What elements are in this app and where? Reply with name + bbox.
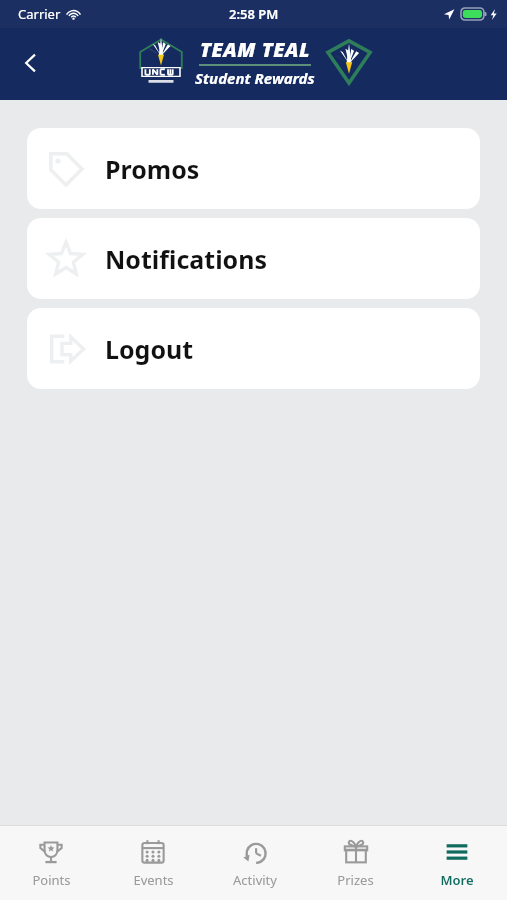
button[interactable]: Promos	[27, 128, 480, 209]
staticText: Prizes	[337, 871, 374, 889]
staticText: More	[440, 871, 474, 889]
staticText: Points	[32, 871, 71, 889]
staticText: Promos	[105, 152, 200, 186]
staticText: Student Rewards	[195, 68, 315, 88]
button[interactable]: Activity	[204, 826, 305, 900]
button[interactable]: Prizes	[305, 826, 406, 900]
staticText: 2:58 PM	[229, 5, 279, 23]
button[interactable]: Events	[102, 826, 204, 900]
button[interactable]: Logout	[27, 308, 480, 389]
staticText: TEAM TEAL	[200, 36, 311, 63]
button[interactable]: Points	[0, 826, 102, 900]
button[interactable]: Back	[8, 40, 54, 86]
staticText: Activity	[233, 871, 277, 889]
button[interactable]: Notifications	[27, 218, 480, 299]
staticText: Carrier	[18, 5, 61, 23]
button[interactable]: More	[406, 826, 507, 900]
staticText: Events	[133, 871, 174, 889]
staticText: Logout	[105, 332, 194, 366]
staticText: Notifications	[105, 242, 268, 276]
